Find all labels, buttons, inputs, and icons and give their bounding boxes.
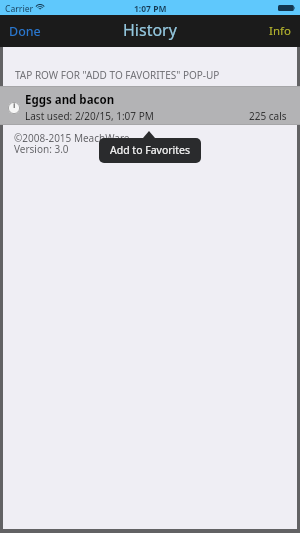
staticText: Carrier bbox=[5, 3, 34, 15]
staticText: Add to Favorites bbox=[110, 143, 191, 157]
button[interactable]: Info bbox=[260, 18, 300, 44]
staticText: Version: 3.0 bbox=[14, 142, 69, 156]
staticText: Done bbox=[9, 23, 41, 40]
staticText: 1:07 PM bbox=[134, 3, 167, 15]
staticText: Info bbox=[269, 23, 291, 39]
other: Recent bbox=[8, 102, 20, 114]
staticText: ©2008-2015 MeachWare bbox=[14, 131, 130, 145]
staticText: Last used: 2/20/15, 1:07 PM bbox=[25, 109, 154, 123]
staticText: History bbox=[123, 19, 177, 41]
button[interactable]: Recent bbox=[0, 86, 300, 125]
button[interactable]: Add to Favorites bbox=[99, 138, 201, 163]
other: Battery bbox=[278, 5, 295, 11]
button[interactable]: Done bbox=[0, 18, 50, 45]
staticText: 225 cals bbox=[249, 109, 287, 123]
staticText: Eggs and bacon bbox=[25, 92, 115, 108]
other: Wi-Fi bbox=[35, 2, 45, 10]
staticText: TAP ROW FOR "ADD TO FAVORITES" POP-UP bbox=[15, 68, 220, 82]
